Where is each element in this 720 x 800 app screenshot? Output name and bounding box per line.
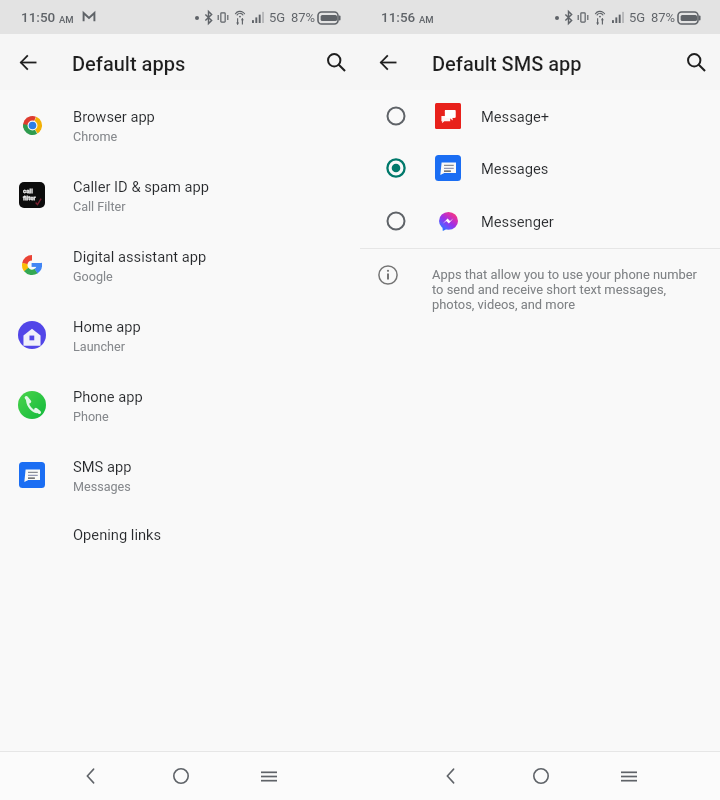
staticText: Call Filter: [73, 199, 126, 214]
button[interactable]: SMS app: [0, 440, 360, 510]
button[interactable]: Home: [513, 752, 569, 800]
button[interactable]: call: [0, 160, 360, 230]
button[interactable]: Home: [153, 752, 209, 800]
button[interactable]: Browser app: [0, 90, 360, 160]
staticText: Browser app: [73, 108, 155, 125]
staticText: 5G: [269, 10, 286, 25]
button[interactable]: Recent apps: [601, 752, 657, 800]
staticText: Default SMS app: [432, 52, 582, 75]
button[interactable]: Back: [422, 752, 478, 800]
staticText: Caller ID & spam app: [73, 178, 209, 195]
staticText: SMS app: [73, 458, 132, 475]
staticText: 87%: [651, 10, 676, 25]
staticText: call: [23, 187, 33, 194]
button[interactable]: Messages: [360, 142, 720, 194]
button[interactable]: Search: [676, 34, 716, 90]
button[interactable]: Message+: [360, 90, 720, 142]
staticText: Launcher: [73, 339, 126, 354]
staticText: Opening links: [73, 526, 162, 543]
staticText: Messages: [73, 479, 131, 494]
staticText: Google: [73, 269, 113, 284]
button[interactable]: Recent apps: [241, 752, 297, 800]
staticText: Home app: [73, 318, 141, 335]
staticText: 11:56: [381, 9, 416, 25]
button[interactable]: Home app: [0, 300, 360, 370]
staticText: Default apps: [72, 52, 186, 75]
button[interactable]: Phone app: [0, 370, 360, 440]
staticText: Chrome: [73, 129, 118, 144]
staticText: 5G: [629, 10, 646, 25]
staticText: Phone: [73, 409, 109, 424]
staticText: AM: [419, 14, 434, 25]
staticText: Digital assistant app: [73, 248, 207, 265]
staticText: Phone app: [73, 388, 143, 405]
staticText: Message+: [481, 108, 550, 125]
button[interactable]: Messenger: [360, 195, 720, 247]
button[interactable]: Opening links: [0, 498, 360, 568]
button[interactable]: Digital assistant app: [0, 230, 360, 300]
button[interactable]: Back: [62, 752, 118, 800]
staticText: 87%: [291, 10, 316, 25]
staticText: 11:50: [21, 9, 56, 25]
button[interactable]: Back: [368, 34, 408, 90]
staticText: Apps that allow you to use your phone nu…: [432, 267, 702, 312]
button[interactable]: Back: [8, 34, 48, 90]
staticText: AM: [59, 14, 74, 25]
staticText: Messenger: [481, 213, 554, 230]
staticText: Messages: [481, 160, 549, 177]
staticText: filter: [23, 194, 36, 201]
button[interactable]: Search: [316, 34, 356, 90]
